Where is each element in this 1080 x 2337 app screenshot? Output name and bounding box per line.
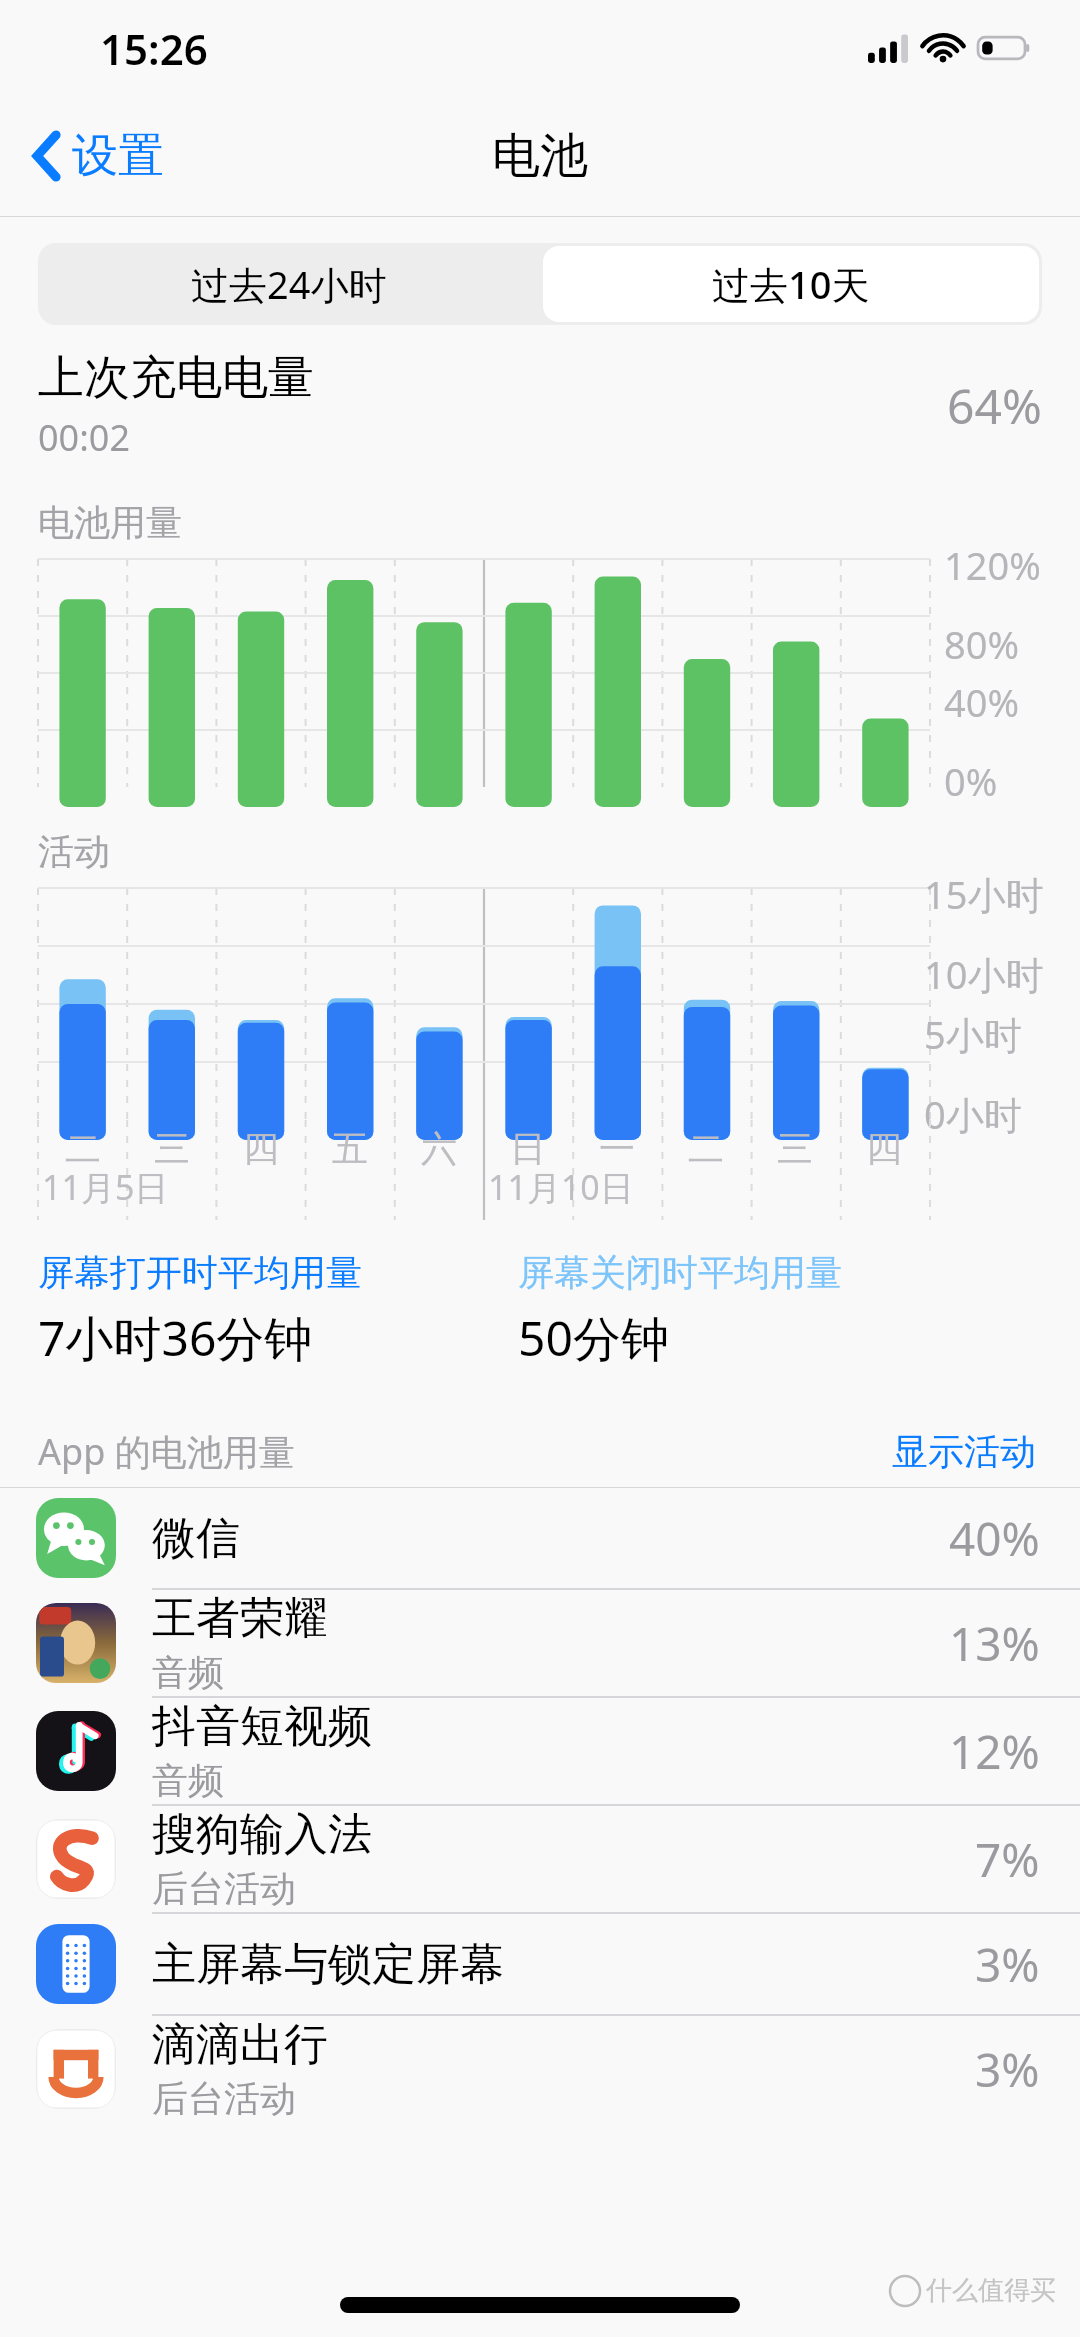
staticText: 设置 bbox=[72, 127, 164, 185]
staticText: 四 bbox=[866, 1126, 902, 1171]
staticText: 11月5日 bbox=[42, 1164, 169, 1210]
button[interactable]: 过去10天 bbox=[543, 246, 1039, 322]
staticText: 一 bbox=[599, 1126, 635, 1171]
staticText: 电池用量 bbox=[38, 500, 182, 545]
staticText: 显示活动 bbox=[892, 1429, 1036, 1474]
staticText: 00:02 bbox=[38, 413, 131, 462]
staticText: 13% bbox=[949, 1612, 1040, 1675]
staticText: 主屏幕与锁定屏幕 bbox=[152, 1937, 504, 1992]
staticText: 日 bbox=[510, 1126, 546, 1171]
staticText: 活动 bbox=[38, 829, 110, 874]
staticText: 二 bbox=[688, 1126, 724, 1171]
staticText: 过去10天 bbox=[712, 258, 870, 310]
staticText: 屏幕打开时平均用量 bbox=[38, 1250, 362, 1295]
staticText: 微信 bbox=[152, 1511, 240, 1566]
staticText: 40% bbox=[944, 676, 1020, 728]
button[interactable]: 过去24小时 bbox=[38, 243, 540, 325]
staticText: 0小时 bbox=[924, 1088, 1022, 1140]
staticText: 15:26 bbox=[100, 20, 208, 77]
staticText: 四 bbox=[243, 1126, 279, 1171]
staticText: 7% bbox=[975, 1828, 1040, 1891]
button[interactable]: 微信 bbox=[0, 1488, 1080, 1588]
staticText: 5小时 bbox=[924, 1008, 1022, 1060]
staticText: 7小时36分钟 bbox=[38, 1305, 313, 1371]
staticText: 3% bbox=[975, 1933, 1040, 1996]
staticText: 11月10日 bbox=[488, 1164, 634, 1210]
staticText: 40% bbox=[949, 1507, 1040, 1570]
button[interactable]: 滴滴出行 bbox=[0, 2016, 1080, 2122]
staticText: 二 bbox=[65, 1126, 101, 1171]
staticText: 电池 bbox=[492, 126, 588, 186]
staticText: 王者荣耀 bbox=[152, 1591, 328, 1646]
staticText: 滴滴出行 bbox=[152, 2017, 328, 2072]
staticText: 3% bbox=[975, 2038, 1040, 2101]
staticText: 三 bbox=[154, 1126, 190, 1171]
button[interactable]: 王者荣耀 bbox=[0, 1590, 1080, 1696]
staticText: 六 bbox=[421, 1126, 457, 1171]
staticText: 0% bbox=[944, 755, 998, 807]
staticText: 三 bbox=[777, 1126, 813, 1171]
button[interactable]: 抖音短视频 bbox=[0, 1698, 1080, 1804]
button[interactable]: 设置 bbox=[26, 117, 172, 195]
staticText: 10小时 bbox=[924, 948, 1044, 1000]
staticText: 屏幕关闭时平均用量 bbox=[518, 1250, 842, 1295]
staticText: 上次充电电量 bbox=[38, 349, 314, 407]
staticText: 音频 bbox=[152, 1758, 224, 1803]
staticText: 搜狗输入法 bbox=[152, 1807, 372, 1862]
staticText: 12% bbox=[949, 1720, 1040, 1783]
staticText: 50分钟 bbox=[518, 1305, 669, 1371]
staticText: 120% bbox=[944, 539, 1041, 591]
button[interactable]: 主屏幕与锁定屏幕 bbox=[0, 1914, 1080, 2014]
staticText: 80% bbox=[944, 618, 1020, 670]
staticText: 抖音短视频 bbox=[152, 1699, 372, 1754]
staticText: 15小时 bbox=[924, 868, 1044, 920]
staticText: 64% bbox=[947, 373, 1042, 438]
button[interactable]: 显示活动 bbox=[886, 1423, 1042, 1480]
staticText: 什么值得买 bbox=[926, 2274, 1056, 2307]
staticText: App 的电池用量 bbox=[38, 1427, 886, 1476]
staticText: 五 bbox=[332, 1126, 368, 1171]
staticText: 后台活动 bbox=[152, 1866, 296, 1911]
staticText: 音频 bbox=[152, 1650, 224, 1695]
button[interactable]: 搜狗输入法 bbox=[0, 1806, 1080, 1912]
staticText: 后台活动 bbox=[152, 2076, 296, 2121]
staticText: 过去24小时 bbox=[191, 258, 387, 310]
